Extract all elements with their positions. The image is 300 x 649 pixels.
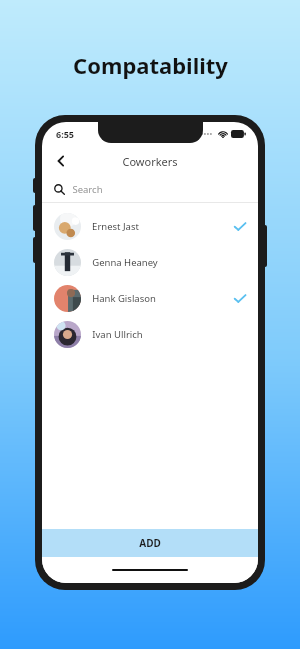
button[interactable]: Back (48, 148, 74, 174)
staticText: ADD (139, 536, 161, 550)
button[interactable]: Ivan Ullrich (42, 316, 258, 352)
staticText: Genna Heaney (92, 256, 158, 269)
button[interactable]: Genna Heaney (42, 244, 258, 280)
button[interactable]: Search (42, 176, 258, 202)
staticText: Hank Gislason (92, 292, 156, 305)
button[interactable]: ADD (42, 529, 258, 557)
staticText: Compatability (73, 50, 228, 80)
staticText: Search (72, 183, 103, 196)
staticText: 6:55 (56, 128, 74, 140)
button[interactable]: Ernest Jast (42, 208, 258, 244)
button[interactable]: Hank Gislason (42, 280, 258, 316)
staticText: Ernest Jast (92, 220, 139, 233)
staticText: Ivan Ullrich (92, 328, 143, 341)
staticText: Coworkers (122, 154, 178, 169)
